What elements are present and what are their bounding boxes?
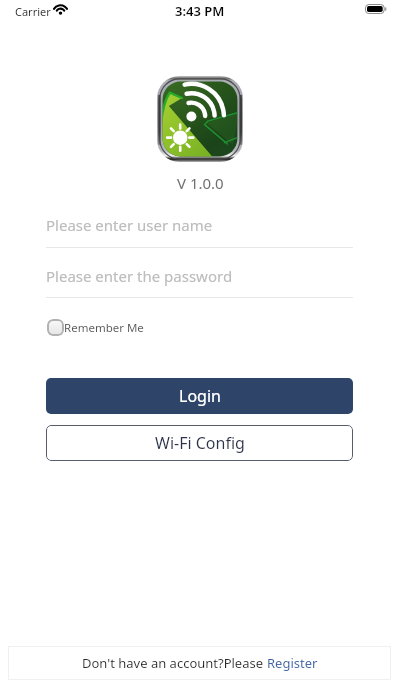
staticText: Carrier bbox=[15, 4, 51, 19]
staticText: 3:43 PM bbox=[175, 2, 225, 20]
staticText: Please enter user name bbox=[46, 215, 213, 235]
staticText: Wi-Fi Config bbox=[155, 432, 245, 454]
staticText: Please enter the password bbox=[46, 266, 233, 286]
staticText: Remember Me bbox=[64, 320, 144, 336]
staticText: Login bbox=[179, 385, 221, 407]
button[interactable]: Don't have an account?Please bbox=[8, 646, 391, 680]
staticText: V 1.0.0 bbox=[177, 173, 224, 193]
button[interactable]: Login bbox=[46, 378, 353, 414]
staticText: Register bbox=[267, 654, 318, 672]
button[interactable]: Wi-Fi Config bbox=[46, 425, 353, 461]
button[interactable]: Remember Me bbox=[46, 319, 144, 336]
staticText: Don't have an account?Please bbox=[82, 654, 267, 672]
